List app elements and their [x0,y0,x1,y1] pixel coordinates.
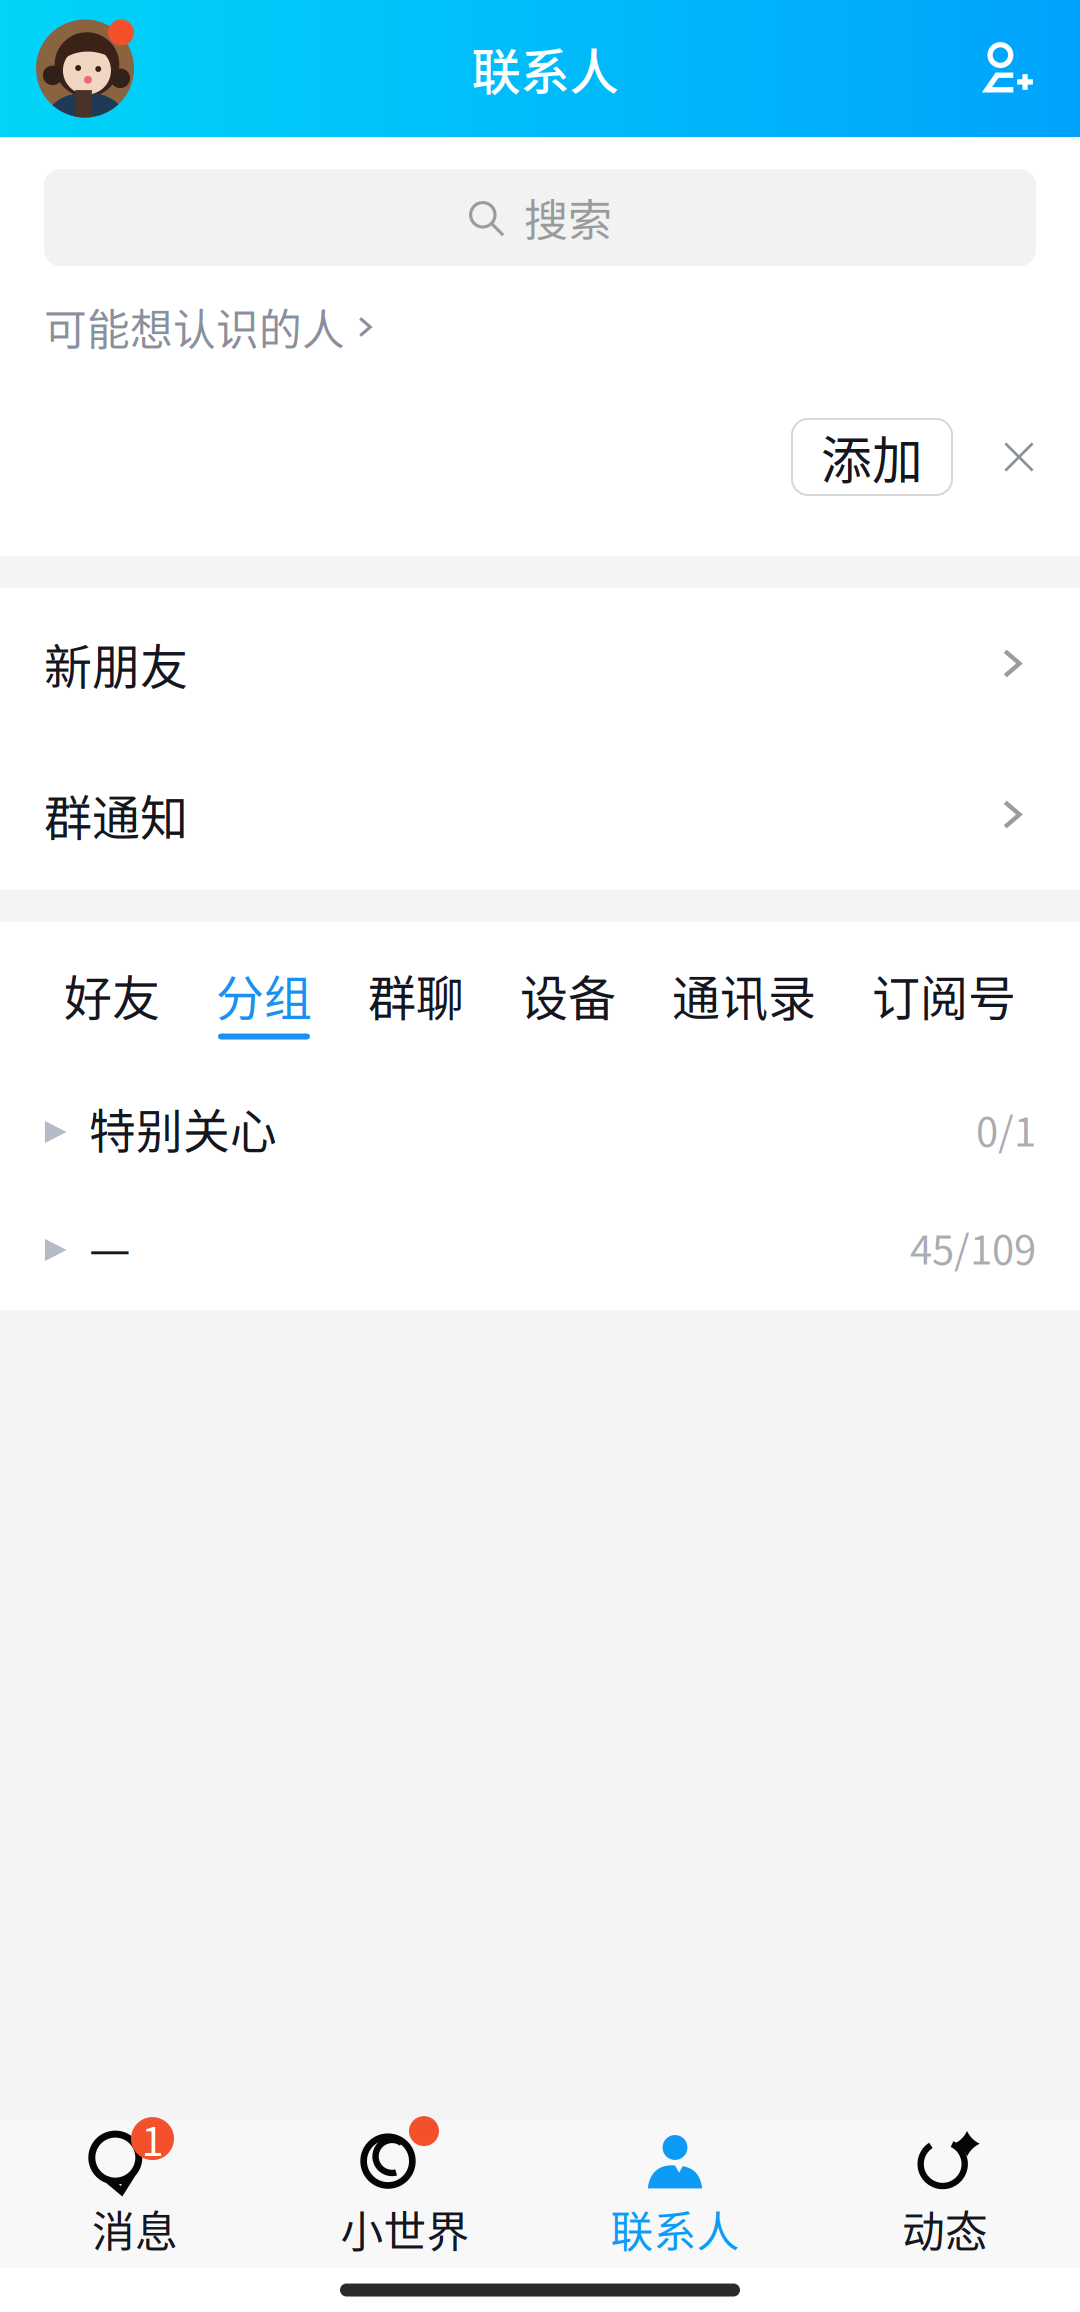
staticText: 新朋友 [44,629,188,698]
staticText: 45/109 [910,1218,1036,1276]
button[interactable]: 分组 [216,922,312,1074]
button[interactable]: Add contact [956,18,1056,118]
staticText: 通讯录 [672,960,816,1029]
staticText: 联系人 [471,33,618,104]
staticText: 消息 [92,2198,178,2260]
staticText: 群通知 [44,780,188,849]
button[interactable]: 小世界 [270,2121,540,2268]
staticText: 好友 [64,960,160,1029]
button[interactable]: 群聊 [368,922,464,1074]
staticText: 群聊 [368,960,464,1029]
button[interactable]: 好友 [64,922,160,1074]
button[interactable]: 1 [0,2121,270,2268]
staticText: 0/1 [976,1100,1036,1158]
staticText: 添加 [821,420,923,494]
button[interactable]: 设备 [520,922,616,1074]
button[interactable]: 通讯录 [672,922,816,1074]
staticText: — [89,1212,131,1280]
staticText: 搜索 [524,186,612,249]
staticText: 分组 [216,960,312,1029]
button[interactable]: 特别关心 [0,1074,1080,1192]
button[interactable]: 添加 [792,419,952,495]
staticText: 1 [141,2110,163,2167]
button[interactable]: 订阅号 [872,922,1016,1074]
staticText: 联系人 [610,2198,739,2260]
button[interactable]: Dismiss [1002,440,1036,474]
staticText: 小世界 [340,2198,469,2260]
staticText: 特别关心 [89,1094,277,1162]
staticText: 可能想认识的人 [44,296,345,358]
button[interactable]: 新朋友 [0,588,1080,739]
button[interactable]: 搜索 [44,169,1036,266]
staticText: 设备 [520,960,616,1029]
button[interactable]: — [0,1192,1080,1310]
staticText: 动态 [902,2198,988,2260]
button[interactable]: Profile [36,19,134,117]
button[interactable]: 动态 [810,2121,1080,2268]
staticText: 订阅号 [872,960,1016,1029]
button[interactable]: 群通知 [0,739,1080,890]
button[interactable]: 联系人 [540,2121,810,2268]
